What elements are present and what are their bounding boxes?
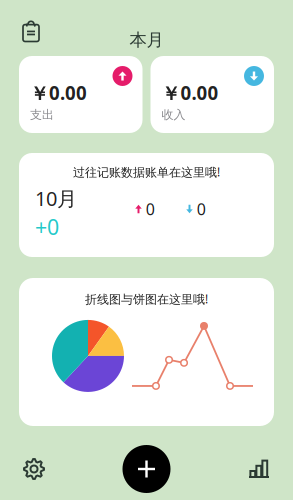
button[interactable]: Records — [16, 15, 46, 48]
staticText: ￥0.00 — [30, 80, 87, 105]
staticText: 折线图与饼图在这里哦! — [85, 291, 208, 307]
button[interactable]: Statistics — [237, 447, 281, 491]
staticText: 0 — [146, 198, 155, 220]
staticText: +0 — [35, 212, 59, 241]
button[interactable]: ￥0.00 — [19, 56, 142, 133]
button[interactable]: Add record — [122, 445, 170, 493]
staticText: 收入 — [161, 107, 185, 122]
staticText: 支出 — [30, 107, 54, 122]
staticText: ￥0.00 — [161, 80, 218, 105]
button[interactable]: ￥0.00 — [150, 56, 274, 133]
button[interactable]: 折线图与饼图在这里哦! — [19, 278, 274, 426]
button[interactable]: 过往记账数据账单在这里哦! — [19, 153, 274, 257]
staticText: 本月 — [129, 29, 163, 51]
staticText: 0 — [197, 198, 206, 220]
button[interactable]: Settings — [12, 447, 56, 491]
staticText: 过往记账数据账单在这里哦! — [73, 164, 220, 180]
staticText: 10月 — [35, 185, 77, 211]
